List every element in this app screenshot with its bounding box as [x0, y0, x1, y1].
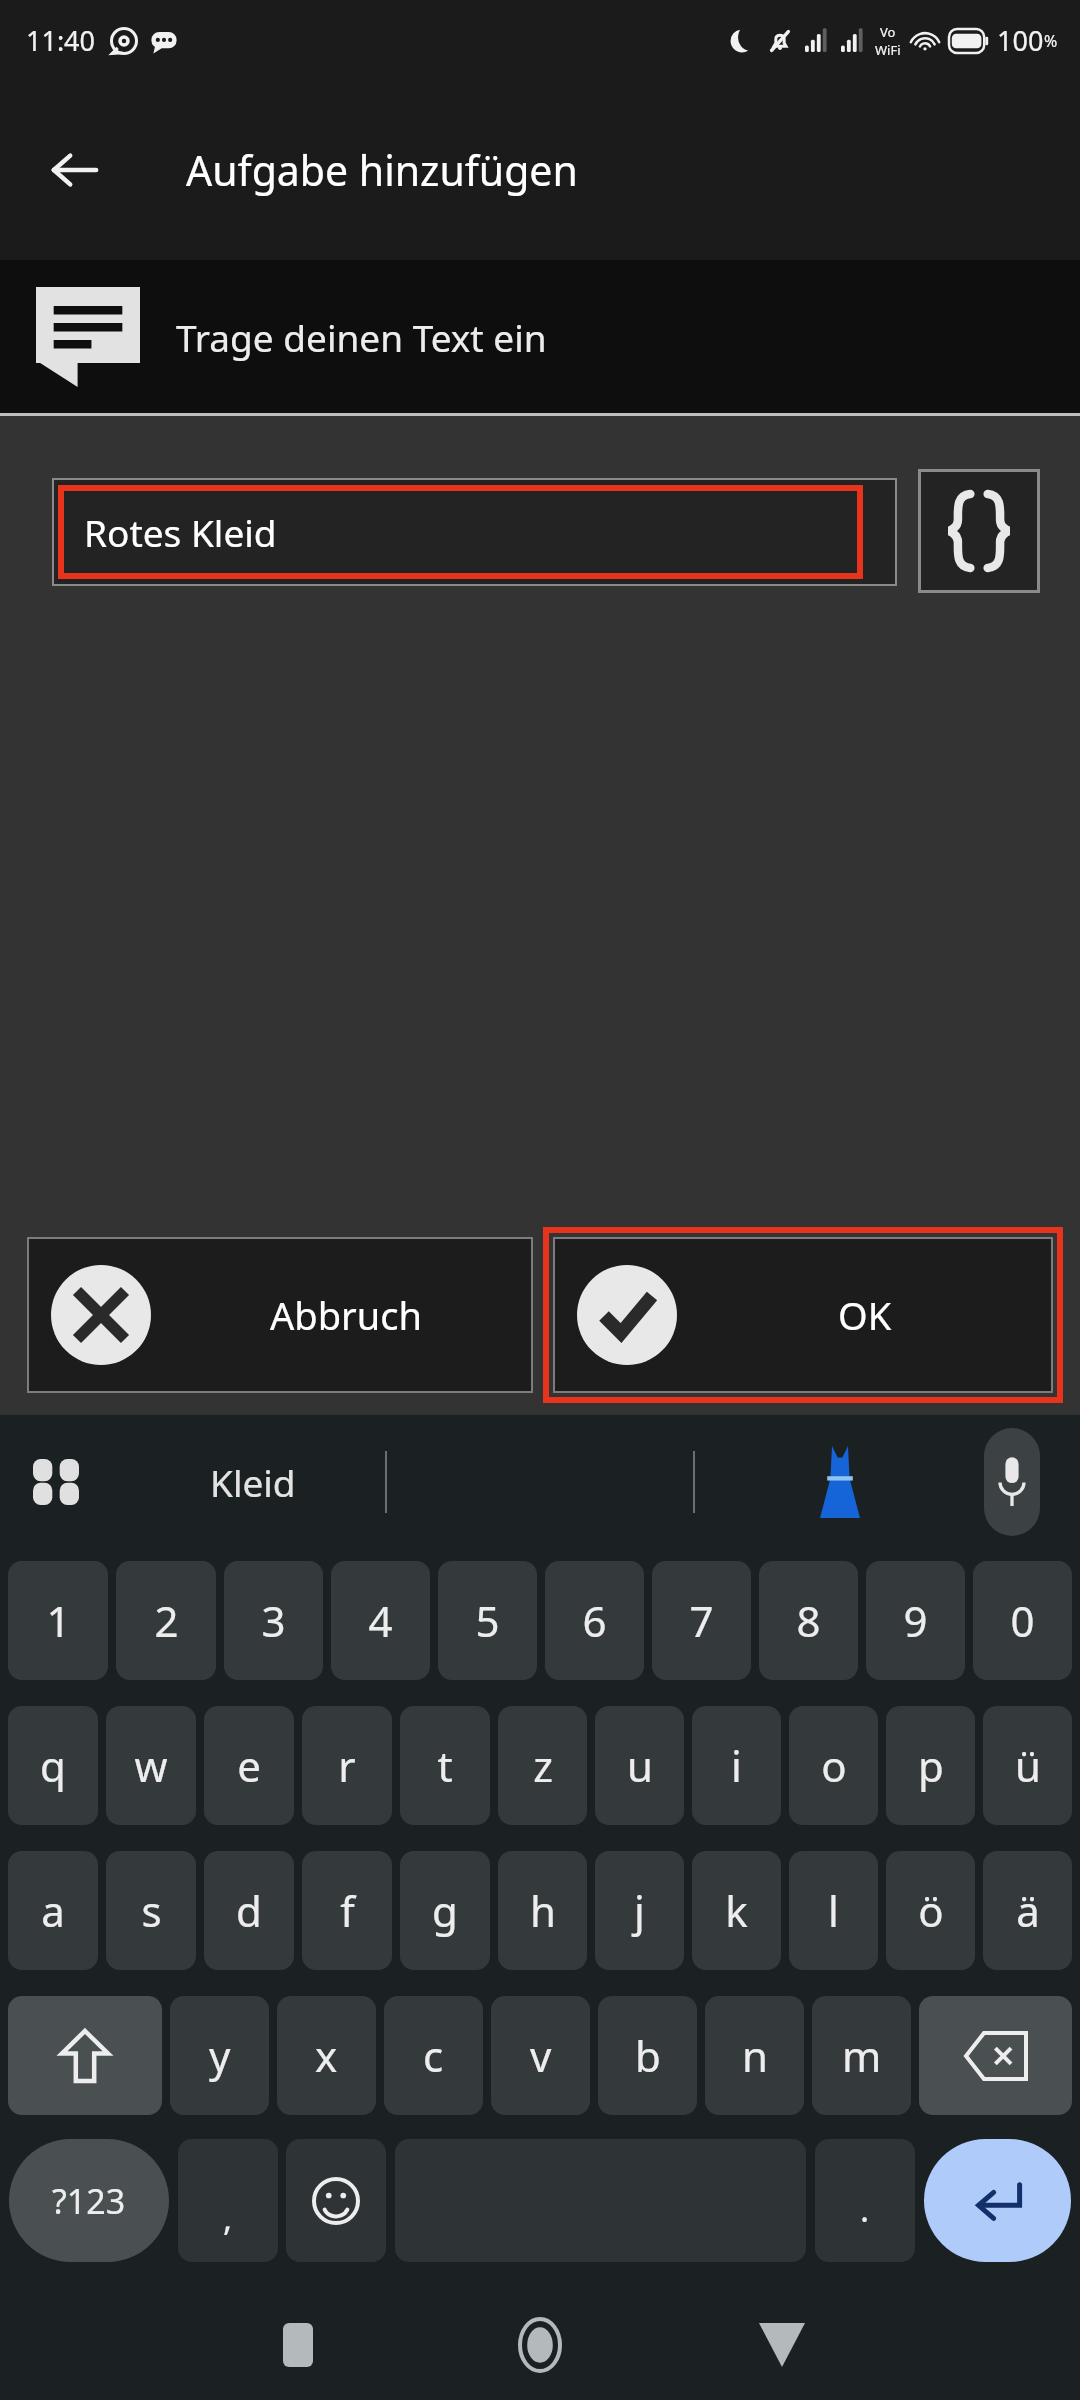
- staticText: ö: [918, 1882, 944, 1939]
- staticText: 100: [997, 22, 1044, 59]
- staticText: c: [423, 2027, 444, 2084]
- button[interactable]: Tastatur schließen: [732, 2295, 832, 2395]
- button[interactable]: 3: [224, 1561, 323, 1680]
- button[interactable]: f: [302, 1851, 392, 1970]
- button[interactable]: Übersicht: [248, 2295, 348, 2395]
- staticText: WiFi: [875, 41, 901, 59]
- button[interactable]: ö: [886, 1851, 975, 1970]
- staticText: e: [237, 1737, 261, 1794]
- staticText: Trage deinen Text ein: [176, 312, 547, 362]
- staticText: n: [742, 2027, 768, 2084]
- staticText: 0: [1010, 1592, 1035, 1649]
- button[interactable]: c: [384, 1996, 483, 2115]
- staticText: 9: [903, 1592, 928, 1649]
- staticText: ü: [1015, 1737, 1041, 1794]
- button[interactable]: Kleid: [120, 1415, 385, 1548]
- staticText: %: [1044, 30, 1058, 52]
- button[interactable]: w: [106, 1706, 196, 1825]
- button[interactable]: m: [812, 1996, 911, 2115]
- button[interactable]: y: [170, 1996, 269, 2115]
- button[interactable]: Umschalttaste: [8, 1996, 162, 2115]
- staticText: ä: [1016, 1882, 1040, 1939]
- button[interactable]: b: [598, 1996, 697, 2115]
- button[interactable]: n: [705, 1996, 804, 2115]
- button[interactable]: o: [789, 1706, 878, 1825]
- button[interactable]: 7: [652, 1561, 751, 1680]
- button[interactable]: 4: [331, 1561, 430, 1680]
- staticText: 3: [261, 1592, 286, 1649]
- staticText: m: [842, 2027, 882, 2084]
- button[interactable]: x: [277, 1996, 376, 2115]
- staticText: Kleid: [210, 1457, 296, 1507]
- button[interactable]: Emoji: [286, 2139, 386, 2262]
- button[interactable]: i: [692, 1706, 781, 1825]
- staticText: f: [340, 1882, 355, 1939]
- staticText: .: [860, 2186, 870, 2232]
- staticText: ?123: [52, 2178, 126, 2224]
- staticText: b: [635, 2027, 661, 2084]
- staticText: s: [141, 1882, 162, 1939]
- button[interactable]: 0: [973, 1561, 1072, 1680]
- staticText: t: [437, 1737, 453, 1794]
- staticText: p: [918, 1737, 944, 1794]
- button[interactable]: 2: [116, 1561, 216, 1680]
- staticText: a: [41, 1882, 65, 1939]
- button[interactable]: l: [789, 1851, 878, 1970]
- button[interactable]: s: [106, 1851, 196, 1970]
- staticText: 11:40: [26, 22, 96, 59]
- button[interactable]: j: [595, 1851, 684, 1970]
- button[interactable]: 6: [545, 1561, 644, 1680]
- staticText: k: [725, 1882, 748, 1939]
- staticText: h: [530, 1882, 556, 1939]
- button[interactable]: q: [8, 1706, 98, 1825]
- staticText: Aufgabe hinzufügen: [186, 142, 578, 198]
- button[interactable]: r: [302, 1706, 392, 1825]
- button[interactable]: ä: [983, 1851, 1072, 1970]
- staticText: ,: [223, 2195, 233, 2241]
- button[interactable]: e: [204, 1706, 294, 1825]
- button[interactable]: g: [400, 1851, 490, 1970]
- button[interactable]: Abbruch: [27, 1237, 533, 1393]
- button[interactable]: a: [8, 1851, 98, 1970]
- button[interactable]: 9: [866, 1561, 965, 1680]
- button[interactable]: Platzhalter einfügen: [918, 469, 1040, 593]
- staticText: OK: [838, 1289, 892, 1341]
- button[interactable]: h: [498, 1851, 587, 1970]
- staticText: i: [731, 1737, 742, 1794]
- button[interactable]: Startseite: [490, 2295, 590, 2395]
- button[interactable]: Zurück: [28, 123, 122, 217]
- button[interactable]: v: [491, 1996, 590, 2115]
- button[interactable]: t: [400, 1706, 490, 1825]
- button[interactable]: .: [815, 2139, 915, 2262]
- button[interactable]: ,: [178, 2139, 278, 2262]
- button[interactable]: k: [692, 1851, 781, 1970]
- button[interactable]: ?123: [9, 2139, 169, 2262]
- button[interactable]: u: [595, 1706, 684, 1825]
- button[interactable]: d: [204, 1851, 294, 1970]
- button[interactable]: Spracheingabe: [984, 1428, 1040, 1536]
- staticText: g: [432, 1882, 458, 1939]
- staticText: v: [530, 2027, 552, 2084]
- staticText: 7: [689, 1592, 714, 1649]
- button[interactable]: Emoji Kleid: [780, 1415, 900, 1548]
- button[interactable]: [52, 478, 897, 586]
- staticText: Abbruch: [270, 1289, 422, 1341]
- staticText: d: [236, 1882, 262, 1939]
- button[interactable]: z: [498, 1706, 587, 1825]
- button[interactable]: ü: [983, 1706, 1072, 1825]
- button[interactable]: p: [886, 1706, 975, 1825]
- button[interactable]: 5: [438, 1561, 537, 1680]
- button[interactable]: Eingabe: [924, 2139, 1071, 2262]
- button[interactable]: OK: [543, 1227, 1063, 1403]
- staticText: 8: [796, 1592, 821, 1649]
- staticText: y: [209, 2027, 231, 2084]
- staticText: o: [821, 1737, 847, 1794]
- button[interactable]: Trage deinen Text ein: [0, 260, 1080, 413]
- button[interactable]: 1: [8, 1561, 108, 1680]
- staticText: 6: [582, 1592, 607, 1649]
- button[interactable]: Menü: [20, 1446, 92, 1518]
- button[interactable]: 8: [759, 1561, 858, 1680]
- button[interactable]: Löschen: [919, 1996, 1072, 2115]
- staticText: Vo: [880, 23, 896, 41]
